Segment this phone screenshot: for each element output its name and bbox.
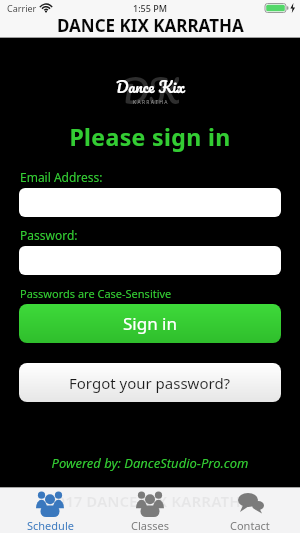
staticText: DK: [122, 62, 179, 108]
button[interactable]: Contact: [200, 487, 300, 533]
staticText: Forgot your password?: [69, 373, 231, 393]
staticText: DANCE KIX KARRATHA: [57, 14, 244, 37]
staticText: Please sign in: [0, 121, 300, 152]
staticText: Schedule: [27, 518, 74, 533]
staticText: 2017 DANCE KIX KARRATHA: [48, 491, 252, 511]
staticText: 1:55 PM: [133, 2, 167, 14]
staticText: Email Address:: [20, 169, 300, 185]
button[interactable]: Sign in: [19, 304, 281, 343]
staticText: Sign in: [123, 312, 177, 335]
staticText: K A R R A T H A: [133, 99, 168, 106]
button[interactable]: [19, 246, 281, 275]
button[interactable]: Powered by: DanceStudio-Pro.com: [0, 454, 300, 472]
button[interactable]: Classes: [100, 487, 200, 533]
staticText: Carrier: [7, 2, 37, 14]
button[interactable]: Forgot your password?: [19, 363, 281, 402]
button[interactable]: Schedule: [0, 487, 100, 533]
staticText: Contact: [230, 518, 270, 533]
staticText: Passwords are Case-Sensitive: [20, 286, 300, 301]
staticText: Password:: [20, 227, 300, 243]
button[interactable]: [19, 188, 281, 217]
staticText: Classes: [131, 518, 169, 533]
staticText: Dance Kix: [116, 73, 185, 99]
